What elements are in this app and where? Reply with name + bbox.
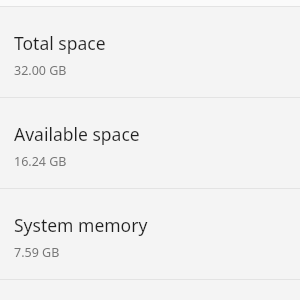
- staticText: 16.24 GB: [14, 153, 67, 170]
- staticText: Available space: [14, 122, 140, 146]
- button[interactable]: Total space: [0, 7, 300, 97]
- button[interactable]: Available space: [0, 98, 300, 188]
- staticText: 32.00 GB: [14, 62, 67, 79]
- staticText: 7.59 GB: [14, 244, 60, 261]
- staticText: Total space: [14, 31, 106, 55]
- staticText: System memory: [14, 213, 148, 237]
- button[interactable]: System memory: [0, 189, 300, 279]
